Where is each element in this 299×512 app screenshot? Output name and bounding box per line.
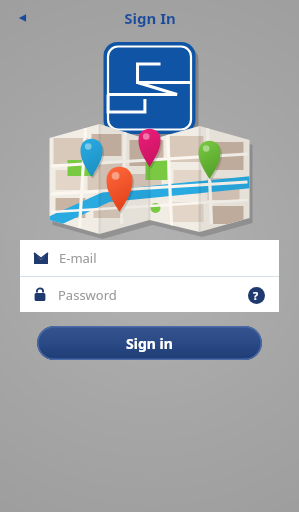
staticText: ?	[253, 288, 259, 303]
staticText: Sign in	[126, 334, 173, 353]
button[interactable]: Password help	[245, 284, 267, 306]
staticText: E-mail	[59, 249, 97, 267]
button[interactable]: Sign in	[37, 326, 262, 360]
button[interactable]: Back	[6, 1, 40, 35]
staticText: Sign In	[124, 8, 176, 28]
button[interactable]: Password	[20, 277, 279, 312]
staticText: Password	[58, 286, 117, 304]
button[interactable]: E-mail	[20, 240, 279, 276]
